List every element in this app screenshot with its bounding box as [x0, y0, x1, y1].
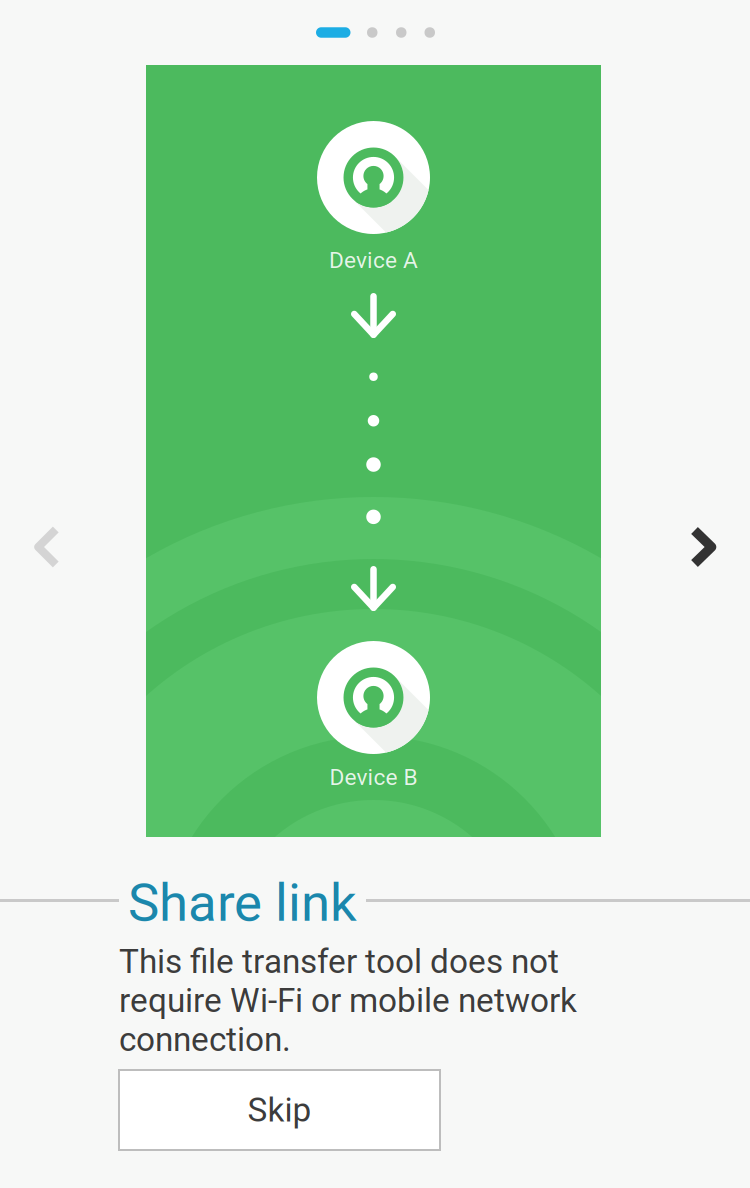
- staticText: Device A: [329, 247, 418, 274]
- staticText: require Wi-Fi or mobile network: [119, 981, 577, 1020]
- staticText: Device B: [329, 764, 417, 791]
- button[interactable]: Skip: [119, 1070, 440, 1150]
- staticText: Share link: [128, 872, 357, 934]
- staticText: Skip: [247, 1090, 311, 1130]
- staticText: This file transfer tool does not: [119, 942, 559, 981]
- button[interactable]: Next: [656, 500, 750, 594]
- button[interactable]: Previous: [0, 500, 94, 594]
- staticText: connection.: [119, 1020, 291, 1059]
